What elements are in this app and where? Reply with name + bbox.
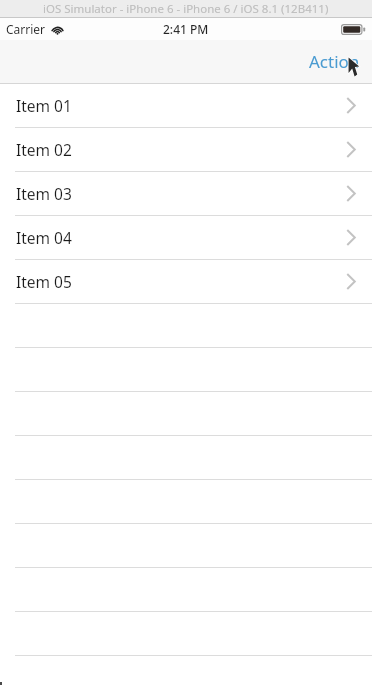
button[interactable]: Item 03 bbox=[0, 172, 372, 215]
button[interactable]: Item 04 bbox=[0, 216, 372, 259]
staticText: Action bbox=[309, 50, 360, 73]
other: Open detail bbox=[346, 273, 357, 290]
staticText: Item 01 bbox=[16, 95, 72, 116]
staticText: Item 03 bbox=[16, 183, 72, 204]
other: Open detail bbox=[346, 185, 357, 202]
button[interactable]: Item 01 bbox=[0, 84, 372, 127]
button[interactable]: Item 05 bbox=[0, 260, 372, 303]
button[interactable]: Item 02 bbox=[0, 128, 372, 171]
staticText: Carrier bbox=[6, 21, 46, 37]
staticText: iOS Simulator - iPhone 6 - iPhone 6 / iO… bbox=[43, 1, 329, 17]
other: Open detail bbox=[346, 141, 357, 158]
staticText: Item 04 bbox=[16, 227, 72, 248]
staticText: Item 02 bbox=[16, 139, 72, 160]
staticText: Item 05 bbox=[16, 271, 72, 292]
button[interactable]: Action bbox=[297, 42, 372, 81]
other: Open detail bbox=[346, 229, 357, 246]
other: Open detail bbox=[346, 97, 357, 114]
staticText: 2:41 PM bbox=[163, 21, 209, 37]
